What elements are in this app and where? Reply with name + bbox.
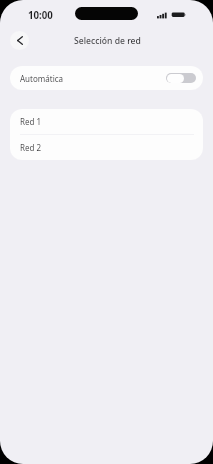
staticText: 10:00 xyxy=(28,9,53,22)
staticText: Selección de red xyxy=(1,35,213,47)
button[interactable]: Back xyxy=(10,31,29,50)
staticText: Automática xyxy=(20,73,64,84)
staticText: Red 1 xyxy=(20,116,42,127)
staticText: Red 2 xyxy=(20,142,42,153)
button[interactable]: Red 1 xyxy=(10,109,203,135)
button[interactable]: Automática xyxy=(10,66,203,90)
button[interactable]: Red 2 xyxy=(10,135,203,160)
